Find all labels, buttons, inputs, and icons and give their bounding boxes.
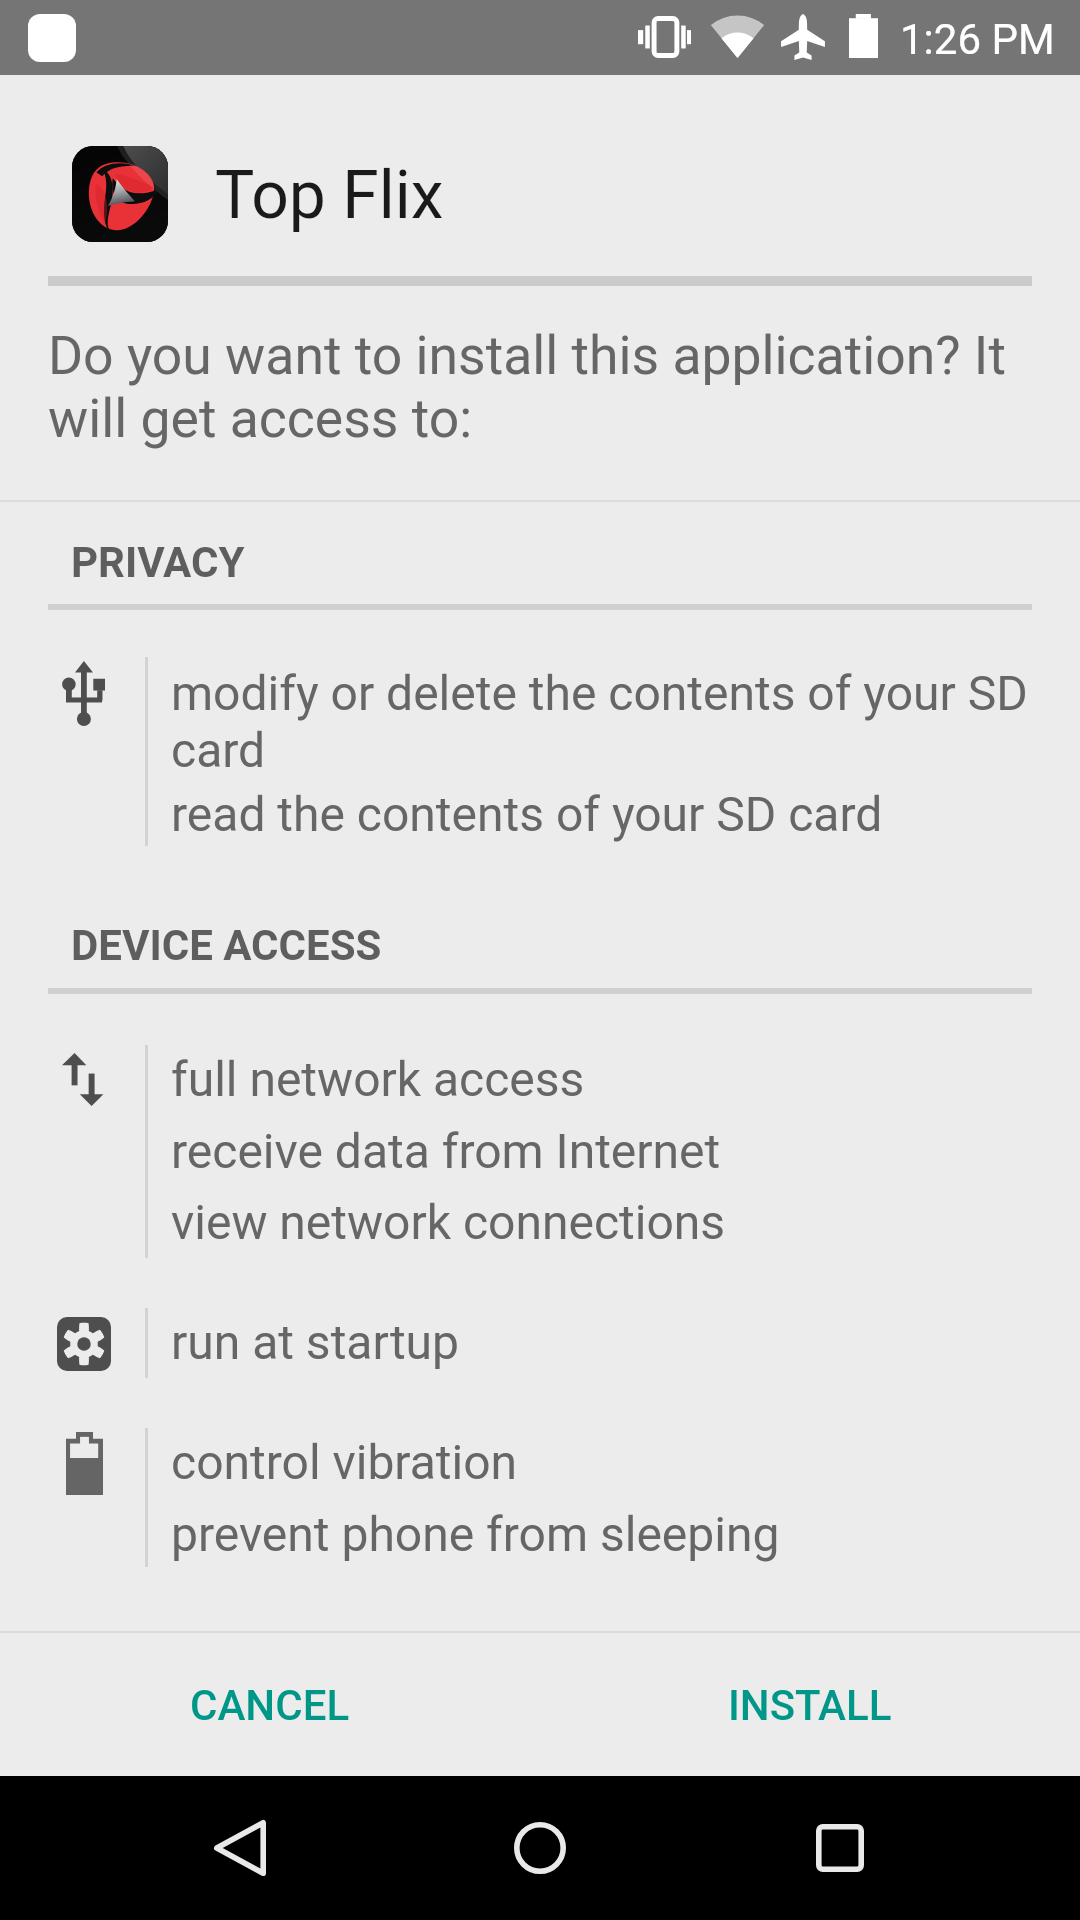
button[interactable]: Home (468, 1776, 612, 1920)
staticText: modify or delete the contents of your SD… (171, 665, 1031, 779)
staticText: receive data from Internet (171, 1123, 721, 1180)
button[interactable]: Back (168, 1776, 312, 1920)
staticText: run at startup (171, 1314, 459, 1371)
staticText: read the contents of your SD card (171, 786, 883, 843)
button[interactable]: Recent apps (768, 1776, 912, 1920)
button[interactable]: CANCEL (0, 1633, 540, 1776)
staticText: Do you want to install this application?… (48, 324, 1020, 450)
staticText: view network connections (171, 1194, 726, 1251)
staticText: prevent phone from sleeping (171, 1506, 780, 1563)
staticText: 1:26 PM (900, 15, 1055, 64)
staticText: PRIVACY (71, 539, 245, 587)
staticText: DEVICE ACCESS (71, 922, 382, 970)
staticText: control vibration (171, 1434, 518, 1491)
button[interactable]: INSTALL (540, 1633, 1080, 1776)
staticText: full network access (171, 1051, 585, 1108)
staticText: CANCEL (190, 1681, 350, 1730)
staticText: INSTALL (728, 1681, 892, 1730)
staticText: Top Flix (215, 159, 444, 233)
